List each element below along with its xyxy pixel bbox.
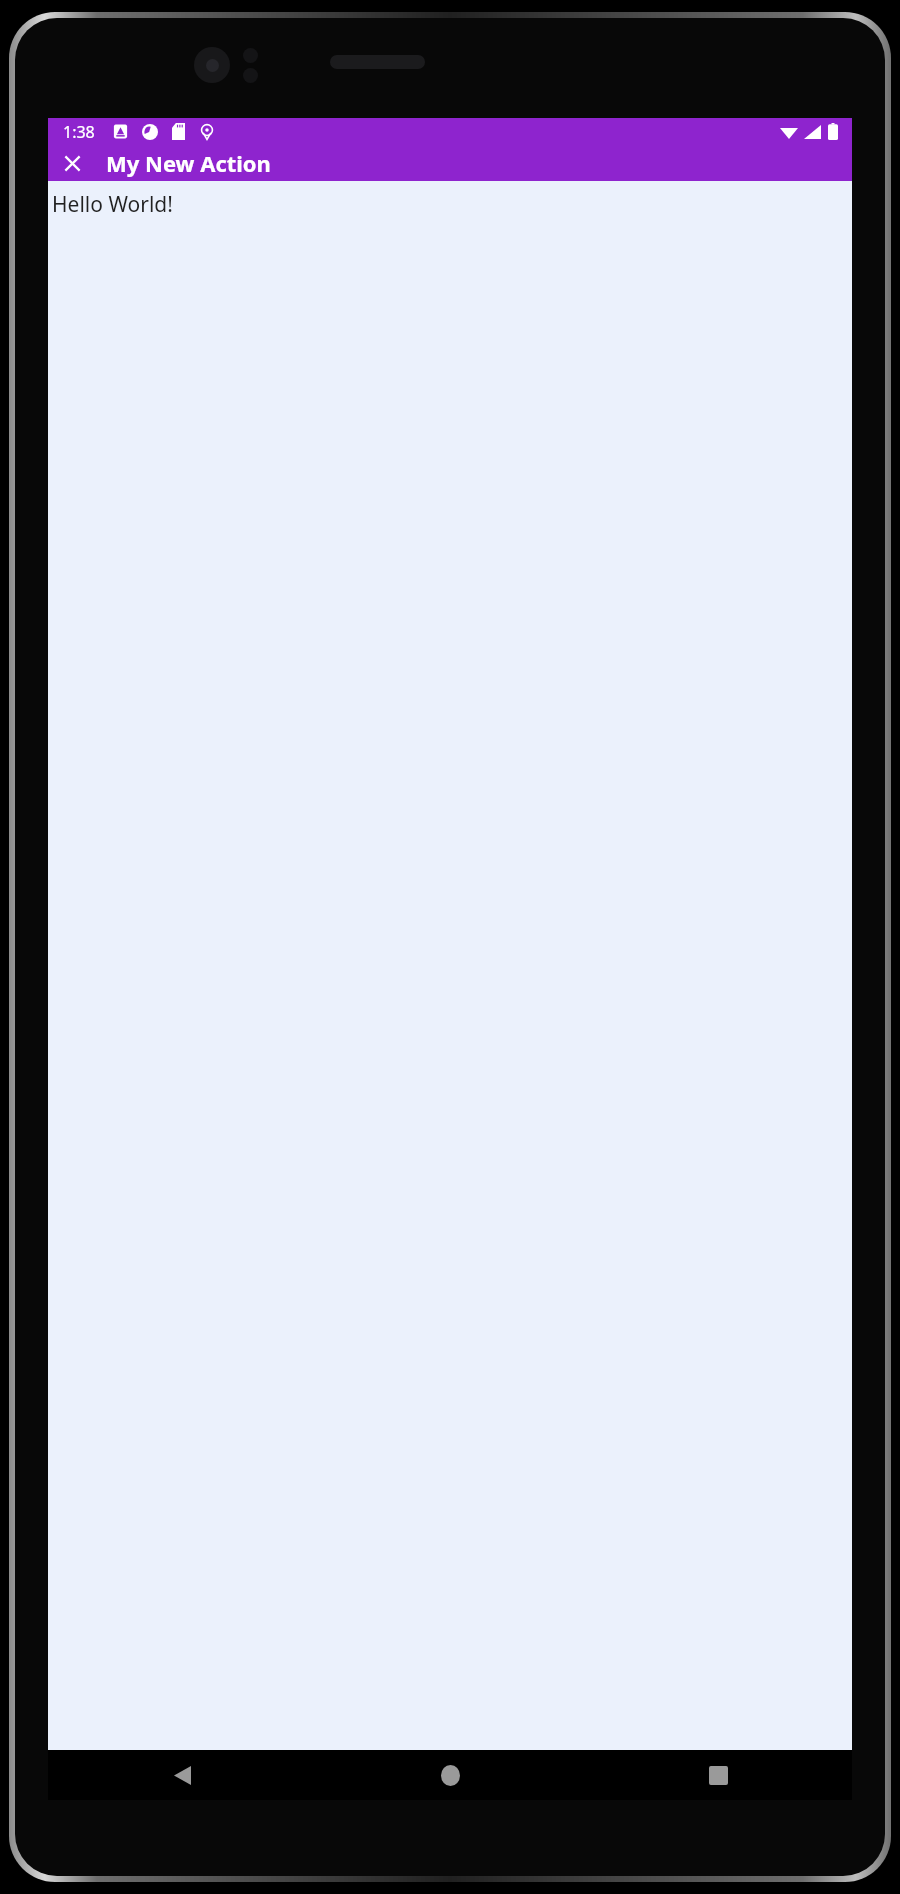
button[interactable]: Recent apps	[584, 1750, 852, 1800]
staticText: My New Action	[106, 148, 271, 178]
button[interactable]: Home	[316, 1750, 584, 1800]
button[interactable]: Back	[48, 1750, 316, 1800]
button[interactable]: Close	[54, 145, 90, 181]
staticText: 1:38	[63, 121, 95, 143]
staticText: Hello World!	[52, 190, 173, 219]
